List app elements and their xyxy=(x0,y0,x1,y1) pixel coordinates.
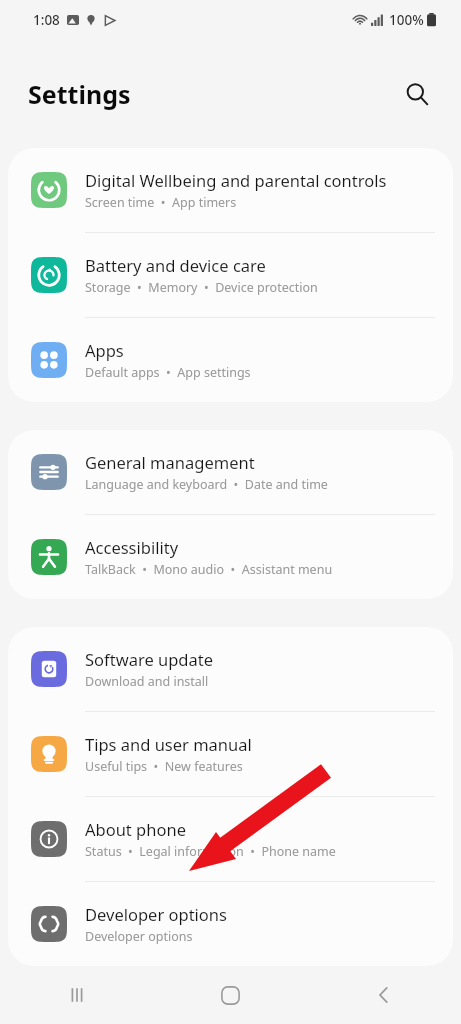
staticText: 1:08 xyxy=(33,11,60,29)
staticText: Useful tips • New features xyxy=(85,758,243,775)
staticText: General management xyxy=(85,451,255,473)
staticText: Digital Wellbeing and parental controls xyxy=(85,169,387,191)
staticText: Default apps • App settings xyxy=(85,364,251,381)
button[interactable]: General management xyxy=(8,430,453,514)
button[interactable]: Recent apps xyxy=(0,966,153,1024)
staticText: Software update xyxy=(85,648,213,670)
staticText: Battery and device care xyxy=(85,254,266,276)
button[interactable]: About phone xyxy=(8,797,453,881)
staticText: Settings xyxy=(28,77,131,111)
staticText: About phone xyxy=(85,818,186,840)
button[interactable]: Apps xyxy=(8,318,453,402)
staticText: Apps xyxy=(85,339,124,361)
staticText: Status • Legal information • Phone name xyxy=(85,843,336,860)
button[interactable]: Battery and device care xyxy=(8,233,453,317)
staticText: Developer options xyxy=(85,903,227,925)
staticText: Developer options xyxy=(85,928,193,945)
staticText: 100% xyxy=(389,11,424,29)
button[interactable]: Home xyxy=(153,966,307,1024)
button[interactable]: Tips and user manual xyxy=(8,712,453,796)
staticText: Download and install xyxy=(85,673,209,690)
staticText: TalkBack • Mono audio • Assistant menu xyxy=(85,561,333,578)
staticText: Screen time • App timers xyxy=(85,194,237,211)
button[interactable]: Software update xyxy=(8,627,453,711)
staticText: Tips and user manual xyxy=(85,733,252,755)
button[interactable]: Search settings xyxy=(395,72,439,116)
button[interactable]: Accessibility xyxy=(8,515,453,599)
staticText: Language and keyboard • Date and time xyxy=(85,476,328,493)
staticText: Accessibility xyxy=(85,536,179,558)
button[interactable]: Back xyxy=(307,966,461,1024)
button[interactable]: Developer options xyxy=(8,882,453,966)
staticText: Storage • Memory • Device protection xyxy=(85,279,318,296)
button[interactable]: Digital Wellbeing and parental controls xyxy=(8,148,453,232)
